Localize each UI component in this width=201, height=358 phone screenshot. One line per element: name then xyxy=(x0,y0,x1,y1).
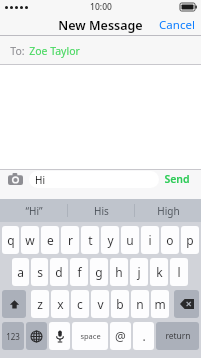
staticText: l xyxy=(177,264,181,280)
button[interactable]: o xyxy=(161,226,179,254)
button[interactable]: High xyxy=(135,199,201,222)
button[interactable]: x xyxy=(51,290,69,318)
button[interactable]: u xyxy=(121,226,139,254)
button[interactable]: q xyxy=(2,226,19,254)
staticText: h xyxy=(115,264,123,280)
staticText: “Hi” xyxy=(25,204,43,218)
button[interactable]: “Hi” xyxy=(0,199,67,222)
button[interactable]: w xyxy=(21,226,39,254)
staticText: p xyxy=(186,232,194,248)
staticText: i xyxy=(148,232,152,248)
staticText: s xyxy=(37,264,43,280)
staticText: o xyxy=(166,232,174,248)
staticText: v xyxy=(97,296,104,312)
staticText: Cancel xyxy=(159,17,195,33)
button[interactable]: a xyxy=(12,258,29,286)
button[interactable]: k xyxy=(150,258,168,286)
button[interactable]: To: xyxy=(0,36,201,65)
staticText: u xyxy=(126,232,134,248)
button[interactable]: p xyxy=(181,226,199,254)
button[interactable]: h xyxy=(110,258,128,286)
button[interactable]: s xyxy=(31,258,48,286)
button[interactable]: v xyxy=(91,290,109,318)
button[interactable]: His xyxy=(68,199,134,222)
button[interactable]: e xyxy=(41,226,59,254)
button[interactable]: g xyxy=(90,258,108,286)
staticText: Send xyxy=(164,172,190,186)
staticText: f xyxy=(77,264,82,280)
staticText: g xyxy=(95,264,103,280)
button[interactable]: b xyxy=(111,290,129,318)
button[interactable]: Dictate xyxy=(49,322,70,350)
staticText: m xyxy=(154,296,166,312)
button[interactable]: c xyxy=(71,290,89,318)
button[interactable]: Hi xyxy=(29,171,159,188)
button[interactable]: r xyxy=(61,226,79,254)
staticText: d xyxy=(55,264,63,280)
button[interactable]: Switch keyboard language xyxy=(26,322,47,350)
staticText: To: xyxy=(10,44,25,58)
button[interactable]: space xyxy=(72,322,108,350)
button[interactable]: f xyxy=(70,258,88,286)
button[interactable]: i xyxy=(141,226,159,254)
staticText: c xyxy=(77,296,83,312)
button[interactable]: . xyxy=(133,322,154,350)
staticText: w xyxy=(25,232,35,248)
staticText: z xyxy=(37,296,43,312)
staticText: 123 xyxy=(6,331,20,342)
staticText: y xyxy=(107,232,114,248)
button[interactable]: Cancel xyxy=(153,14,201,36)
button[interactable]: y xyxy=(101,226,119,254)
staticText: His xyxy=(94,204,109,218)
staticText: b xyxy=(116,296,124,312)
staticText: 10:00 xyxy=(90,1,112,13)
staticText: High xyxy=(157,204,180,218)
staticText: j xyxy=(137,264,141,280)
button[interactable]: Camera xyxy=(6,170,24,188)
staticText: t xyxy=(88,232,93,248)
button[interactable]: d xyxy=(50,258,68,286)
staticText: k xyxy=(156,264,163,280)
staticText: return xyxy=(165,330,191,342)
staticText: a xyxy=(17,264,24,280)
button[interactable]: 123 xyxy=(2,322,24,350)
staticText: r xyxy=(68,232,73,248)
staticText: @ xyxy=(115,328,126,344)
staticText: n xyxy=(136,296,144,312)
staticText: x xyxy=(57,296,64,312)
staticText: q xyxy=(7,232,15,248)
button[interactable]: @ xyxy=(110,322,131,350)
button[interactable]: l xyxy=(170,258,188,286)
button[interactable]: t xyxy=(81,226,99,254)
button[interactable]: Shift xyxy=(2,290,26,318)
staticText: . xyxy=(142,328,146,344)
button[interactable]: n xyxy=(131,290,149,318)
staticText: space xyxy=(80,331,101,341)
staticText: Zoe Taylor xyxy=(29,44,80,58)
button[interactable]: z xyxy=(31,290,49,318)
staticText: New Message xyxy=(58,17,143,34)
button[interactable]: j xyxy=(130,258,148,286)
staticText: e xyxy=(47,232,54,248)
button[interactable]: return xyxy=(156,322,199,350)
staticText: Hi xyxy=(35,173,45,187)
button[interactable]: Send xyxy=(159,169,195,189)
button[interactable]: Delete xyxy=(174,290,199,318)
button[interactable]: m xyxy=(151,290,169,318)
